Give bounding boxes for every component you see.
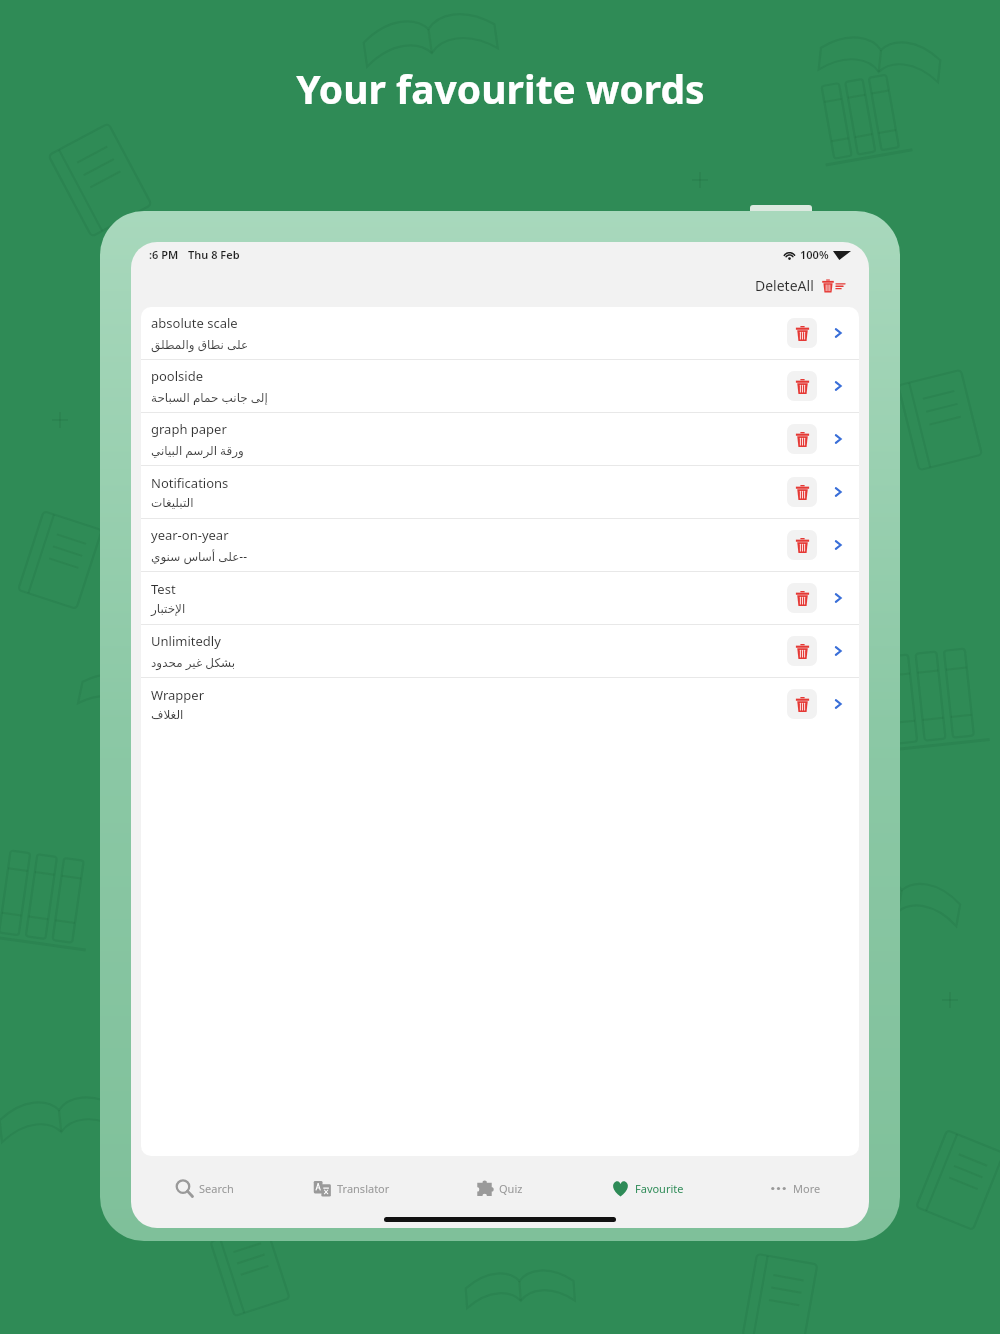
button[interactable]: Translator [278, 1166, 425, 1210]
staticText: :6 PM [149, 247, 179, 262]
button[interactable]: Open details [827, 481, 849, 503]
button[interactable]: Delete word [787, 583, 817, 613]
button[interactable]: Open details [827, 428, 849, 450]
button[interactable]: Test [141, 572, 859, 624]
button[interactable]: Favourite [573, 1166, 721, 1210]
button[interactable]: Delete word [787, 477, 817, 507]
button[interactable]: Delete word [787, 689, 817, 719]
button[interactable]: Open details [827, 534, 849, 556]
button[interactable]: absolute scale [141, 307, 859, 359]
button[interactable]: poolside [141, 360, 859, 412]
staticText: 100% [800, 247, 829, 262]
staticText: Favourite [635, 1181, 684, 1196]
staticText: ورقة الرسم البياني [151, 442, 244, 458]
button[interactable]: Open details [827, 375, 849, 397]
button[interactable]: DeleteAll [751, 272, 849, 299]
button[interactable]: Delete word [787, 636, 817, 666]
button[interactable]: Open details [827, 322, 849, 344]
staticText: بشكل غير محدود [151, 654, 236, 670]
button[interactable]: Open details [827, 693, 849, 715]
button[interactable]: Delete word [787, 318, 817, 348]
staticText: على أساس سنوي-- [151, 548, 248, 564]
staticText: absolute scale [151, 314, 238, 332]
staticText: Translator [337, 1181, 390, 1196]
button[interactable]: Open details [827, 587, 849, 609]
staticText: التبليغات [151, 496, 194, 510]
button[interactable]: graph paper [141, 413, 859, 465]
staticText: year-on-year [151, 526, 229, 544]
button[interactable]: Delete word [787, 371, 817, 401]
staticText: على نطاق والمطلق [151, 336, 249, 352]
staticText: More [793, 1181, 821, 1196]
staticText: Your favourite words [296, 62, 705, 115]
button[interactable]: Delete word [787, 424, 817, 454]
button[interactable]: Search [131, 1166, 278, 1210]
button[interactable]: Quiz [425, 1166, 573, 1210]
staticText: Notifications [151, 474, 229, 492]
button[interactable]: Open details [827, 640, 849, 662]
staticText: graph paper [151, 420, 227, 438]
staticText: Wrapper [151, 686, 205, 704]
button[interactable]: year-on-year [141, 519, 859, 571]
staticText: DeleteAll [755, 276, 814, 295]
staticText: Search [199, 1181, 234, 1196]
staticText: الغلاف [151, 708, 184, 722]
staticText: Quiz [499, 1181, 523, 1196]
staticText: Thu 8 Feb [188, 247, 240, 262]
button[interactable]: More [721, 1166, 869, 1210]
staticText: poolside [151, 367, 203, 385]
button[interactable]: Delete word [787, 530, 817, 560]
button[interactable]: Wrapper [141, 678, 859, 730]
staticText: Test [151, 580, 176, 598]
staticText: إلى جانب حمام السباحة [151, 389, 268, 405]
button[interactable]: Unlimitedly [141, 625, 859, 677]
staticText: الإختبار [151, 602, 186, 616]
button[interactable]: Notifications [141, 466, 859, 518]
staticText: Unlimitedly [151, 632, 221, 650]
